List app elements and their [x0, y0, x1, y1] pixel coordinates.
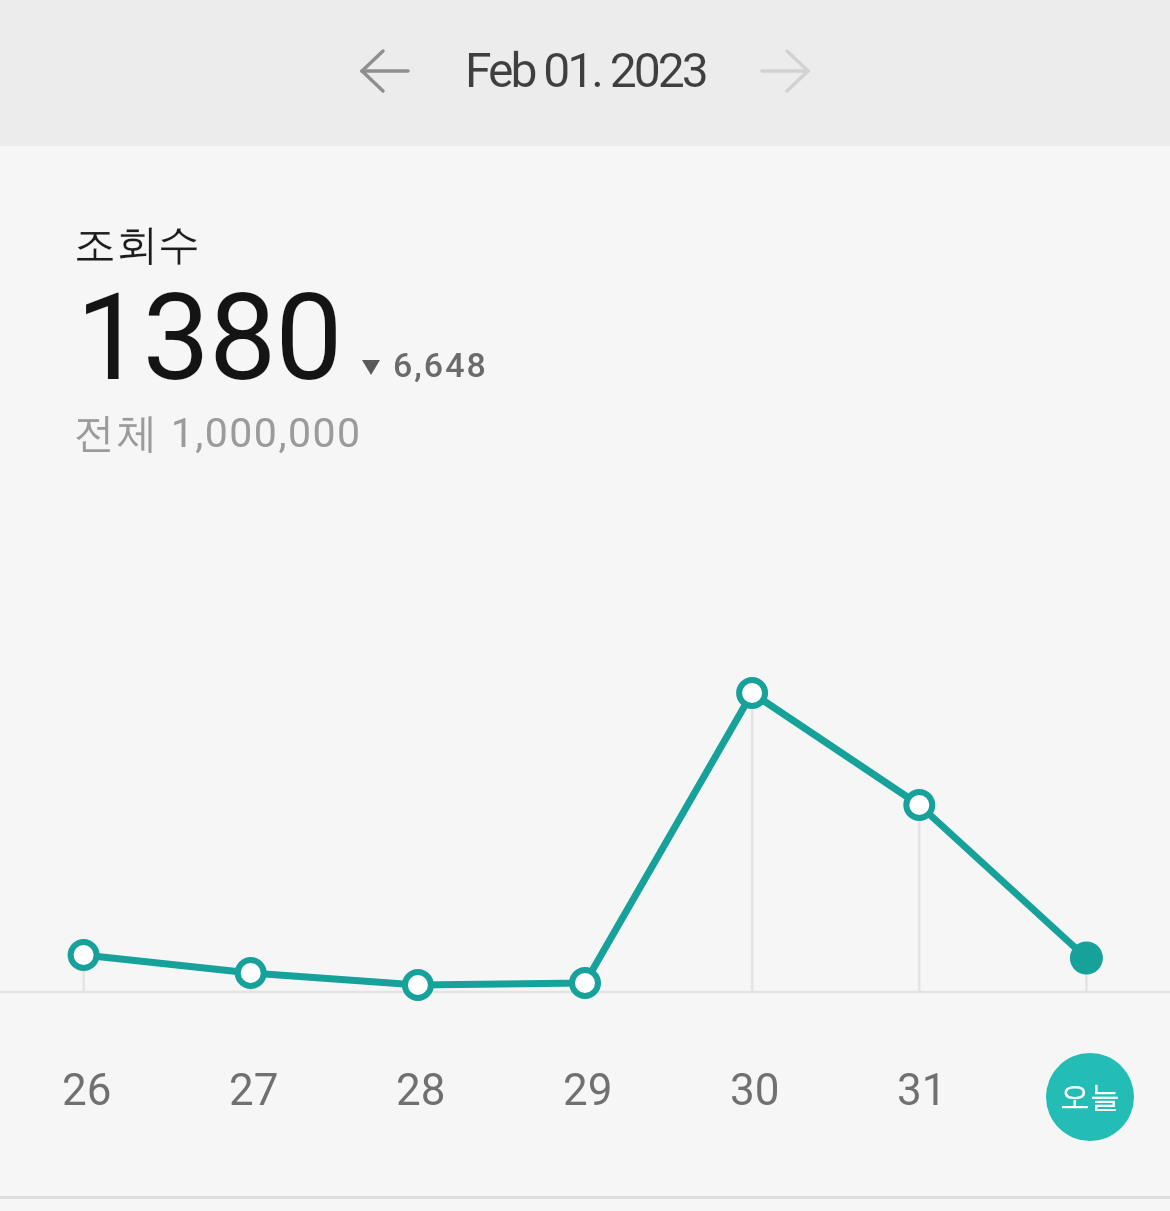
staticText: 전체 1,000,000	[74, 408, 362, 460]
button[interactable]: 28	[337, 1045, 504, 1135]
button[interactable]: 26	[3, 1045, 170, 1135]
staticText: 6,648	[393, 345, 488, 385]
button[interactable]: 29	[504, 1045, 671, 1135]
button[interactable]	[335, 21, 435, 121]
staticText: 조회수	[74, 219, 200, 272]
button[interactable]: 31	[838, 1045, 1005, 1135]
staticText: 오늘	[1060, 1078, 1120, 1116]
staticText: 29	[563, 1064, 613, 1116]
button[interactable]: 30	[671, 1045, 838, 1135]
button[interactable]: 27	[170, 1045, 337, 1135]
staticText: 26	[62, 1064, 112, 1116]
staticText: 31	[897, 1064, 947, 1116]
staticText: 30	[730, 1064, 780, 1116]
staticText: Feb 01. 2023	[465, 42, 706, 98]
staticText: 27	[229, 1064, 279, 1116]
staticText: 28	[396, 1064, 446, 1116]
button[interactable]: 오늘	[1046, 1053, 1134, 1141]
staticText: 1380	[76, 268, 342, 409]
button[interactable]	[735, 21, 835, 121]
